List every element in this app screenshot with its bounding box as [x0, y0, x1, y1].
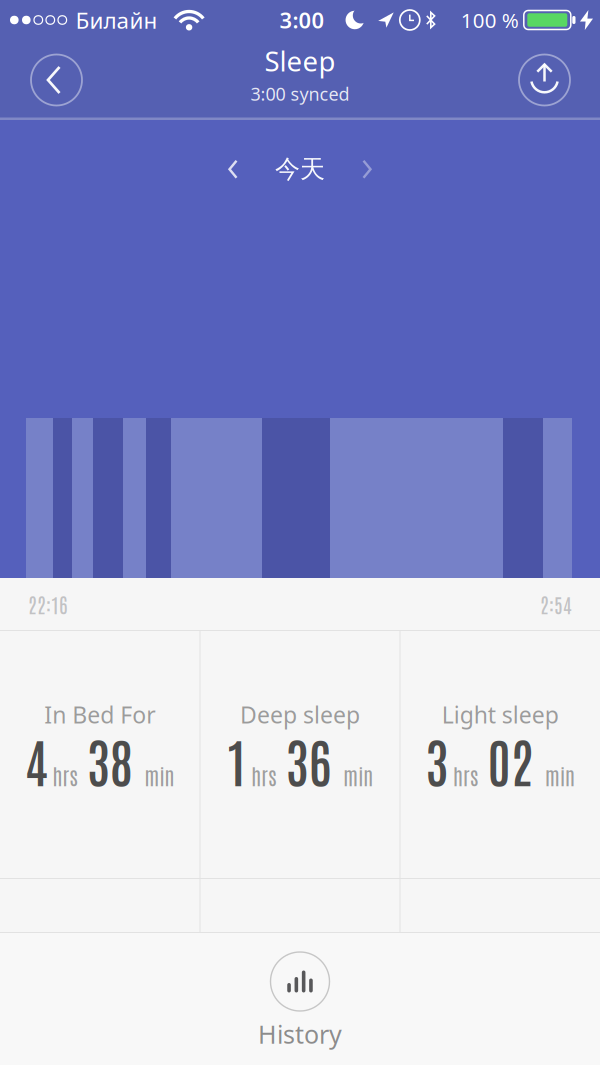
staticText: hrs — [52, 762, 77, 789]
staticText: 3:00 — [279, 5, 324, 35]
staticText: 2:54 — [540, 591, 572, 617]
staticText: hrs — [251, 762, 276, 789]
staticText: 今天 — [275, 153, 325, 185]
staticText: 100 % — [461, 6, 519, 34]
staticText: 3:00 synced — [250, 81, 349, 106]
staticText: min — [144, 762, 174, 789]
staticText: 22:16 — [28, 591, 68, 617]
button[interactable] — [227, 159, 239, 179]
staticText: 38 — [87, 726, 133, 793]
staticText: hrs — [453, 762, 478, 789]
staticText: 02 — [487, 726, 533, 793]
staticText: In Bed For — [44, 699, 155, 730]
staticText: History — [258, 1017, 342, 1051]
staticText: min — [343, 762, 373, 789]
button[interactable] — [519, 54, 570, 105]
staticText: 3 — [425, 726, 448, 793]
staticText: min — [545, 762, 575, 789]
button[interactable]: History — [258, 952, 342, 1051]
staticText: Deep sleep — [240, 699, 360, 730]
staticText: Билайн — [76, 5, 158, 35]
staticText: 1 — [227, 726, 247, 793]
staticText: 4 — [25, 726, 48, 793]
staticText: Light sleep — [442, 699, 559, 730]
button[interactable] — [31, 54, 82, 105]
staticText: Sleep — [264, 42, 335, 79]
button[interactable] — [361, 159, 373, 179]
staticText: 36 — [286, 726, 332, 793]
